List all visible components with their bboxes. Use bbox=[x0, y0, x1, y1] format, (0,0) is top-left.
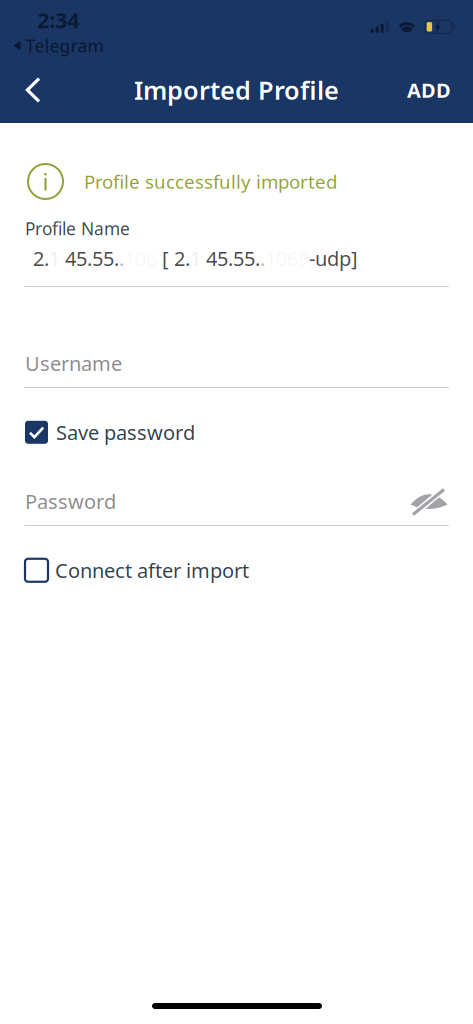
staticText: 45.55. bbox=[201, 245, 260, 272]
staticText: -udp] bbox=[309, 245, 358, 272]
staticText: [ 2. bbox=[157, 245, 190, 272]
staticText: 2:34 bbox=[37, 6, 79, 34]
button[interactable]: ADD bbox=[385, 63, 473, 117]
staticText: . bbox=[119, 245, 124, 272]
staticText: Profile successfully imported bbox=[84, 169, 337, 194]
staticText: Password bbox=[25, 488, 116, 515]
button[interactable]: Show password bbox=[410, 489, 448, 515]
button[interactable]: Back bbox=[0, 64, 66, 116]
staticText: . bbox=[260, 245, 265, 272]
staticText: Imported Profile bbox=[134, 73, 339, 107]
staticText: Username bbox=[25, 350, 122, 377]
staticText: Connect after import bbox=[55, 557, 249, 584]
staticText: 1 bbox=[49, 245, 60, 272]
staticText: Save password bbox=[56, 419, 195, 446]
button[interactable]: Connect after import bbox=[21, 553, 253, 588]
staticText: 2. bbox=[33, 245, 49, 272]
staticText: ADD bbox=[407, 77, 451, 103]
staticText: 45.55. bbox=[60, 245, 119, 272]
staticText: 1 bbox=[190, 245, 201, 272]
staticText: Profile Name bbox=[25, 217, 130, 240]
button[interactable]: Save password bbox=[21, 415, 199, 450]
staticText: Telegram bbox=[25, 34, 103, 57]
